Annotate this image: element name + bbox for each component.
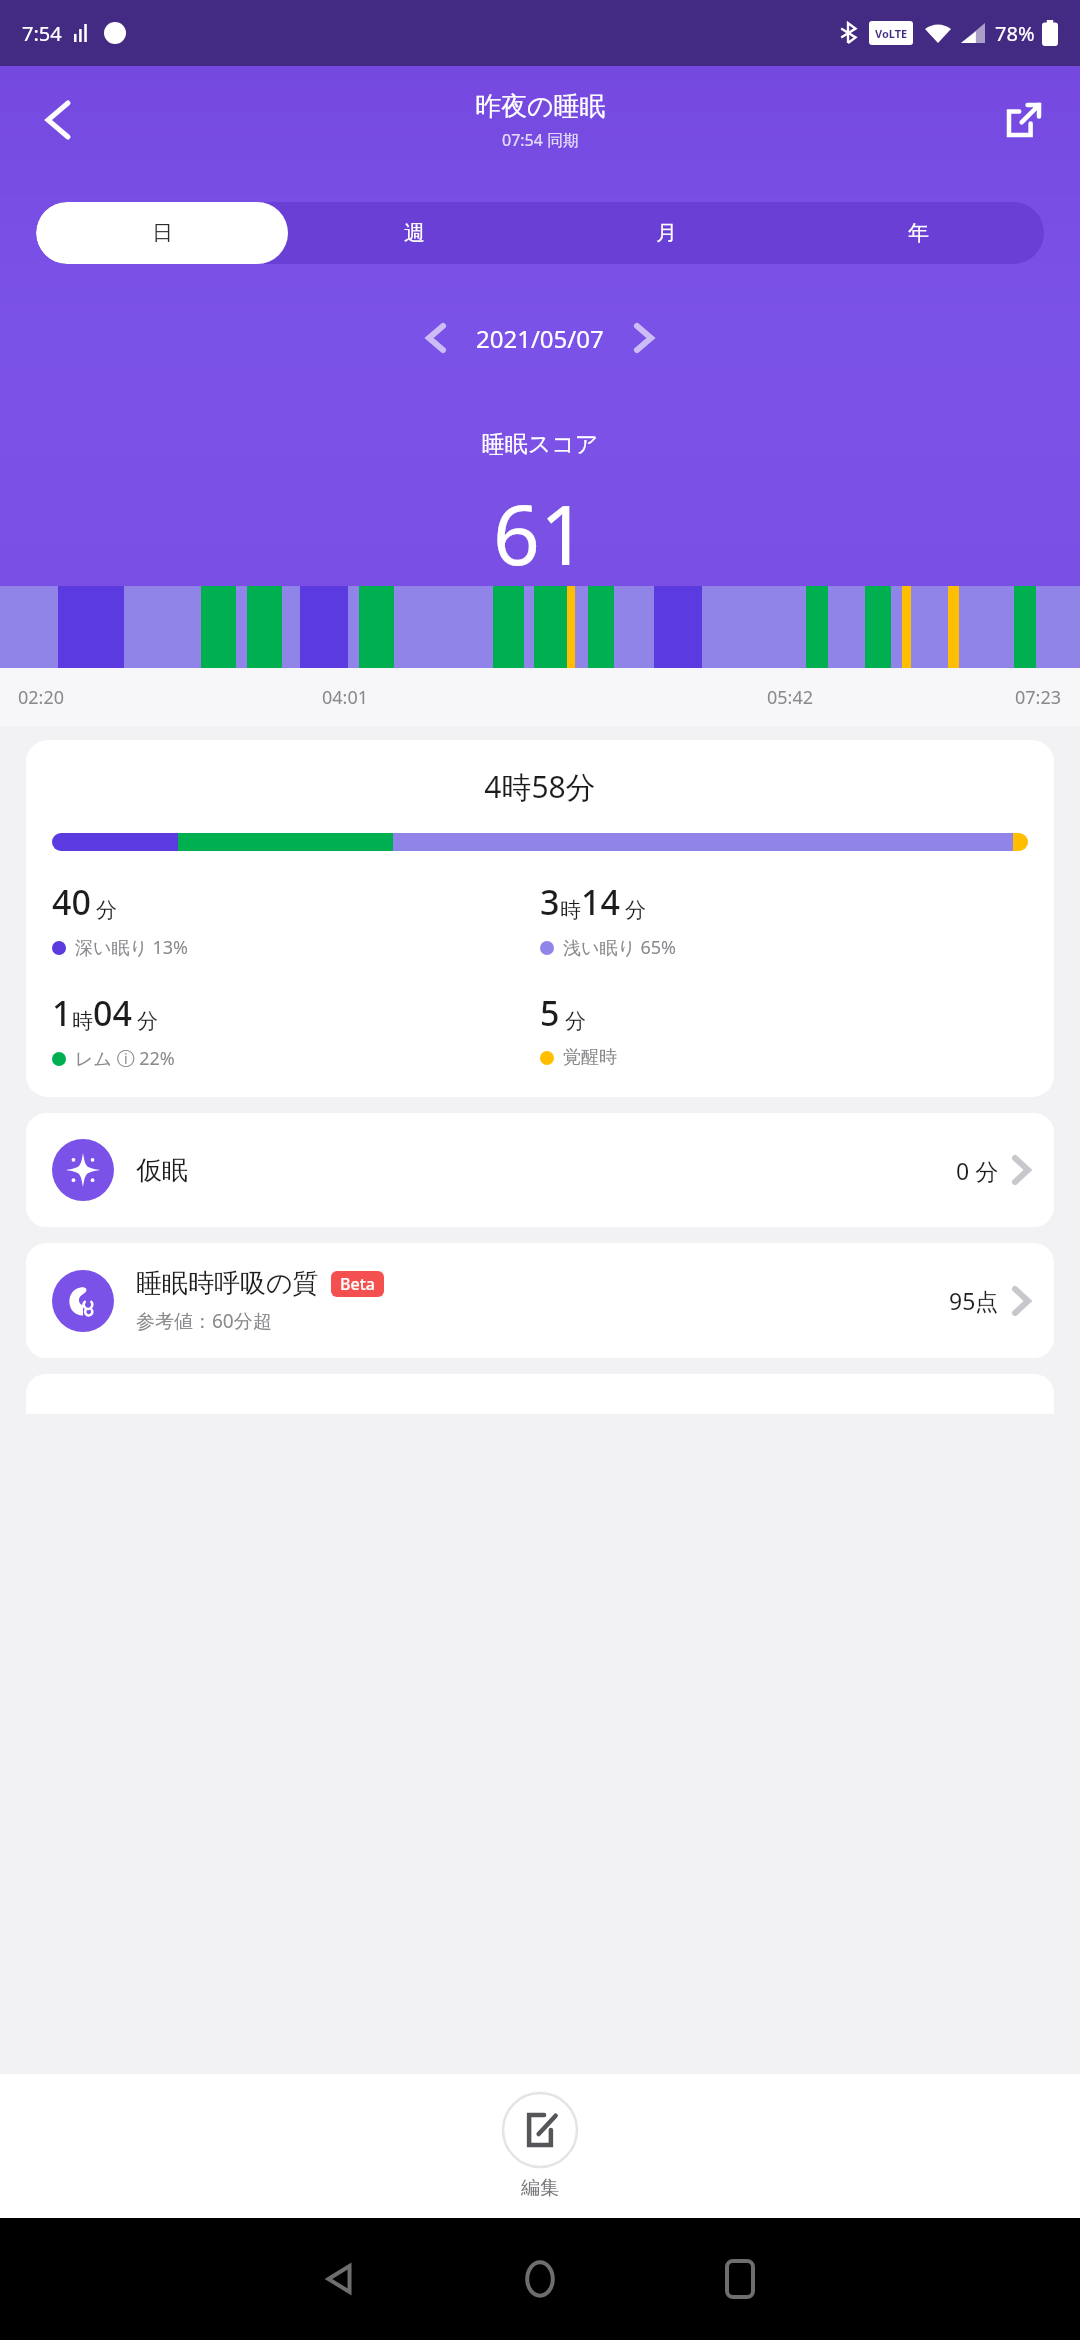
staticText: 分 <box>565 1008 586 1034</box>
staticText: 40 <box>52 879 91 925</box>
staticText: 04:01 <box>322 685 369 710</box>
button[interactable]: Home <box>440 2218 640 2340</box>
staticText: 04 <box>93 990 132 1036</box>
staticText: 05:42 <box>767 685 814 710</box>
staticText: 0 分 <box>956 1155 999 1186</box>
staticText: 78% <box>995 20 1035 47</box>
staticText: 7:54 <box>22 20 62 47</box>
button[interactable]: 年 <box>792 202 1044 264</box>
staticText: 昨夜の睡眠 <box>475 90 606 123</box>
staticText: 07:54 同期 <box>502 129 580 151</box>
staticText: レム ⓘ 22% <box>75 1046 175 1071</box>
button[interactable]: Back <box>30 92 86 148</box>
staticText: 95点 <box>949 1285 999 1316</box>
staticText: 浅い眠り 65% <box>563 935 677 960</box>
button[interactable]: Share <box>996 92 1052 148</box>
button[interactable]: 週 <box>288 202 540 264</box>
staticText: 月 <box>656 220 677 246</box>
staticText: 時 <box>560 897 581 923</box>
button[interactable]: 編集 <box>502 2092 578 2200</box>
staticText: 時 <box>72 1008 93 1034</box>
button[interactable]: 仮眠 <box>26 1113 1054 1227</box>
button[interactable]: 4時58分 <box>26 740 1054 1097</box>
button[interactable]: Next day <box>618 312 670 364</box>
staticText: 61 <box>0 477 1080 586</box>
staticText: 睡眠スコア <box>0 430 1080 459</box>
staticText: 仮眠 <box>136 1154 188 1187</box>
staticText: 5 <box>540 990 560 1036</box>
staticText: 4時58分 <box>26 766 1054 807</box>
staticText: VoLTE <box>875 26 908 41</box>
button[interactable]: Recents <box>640 2218 840 2340</box>
button[interactable]: Back <box>240 2218 440 2340</box>
staticText: 週 <box>404 220 425 246</box>
button[interactable]: 睡眠時呼吸の質 <box>26 1243 1054 1358</box>
staticText: 07:23 <box>1015 685 1062 710</box>
staticText: 14 <box>581 879 620 925</box>
staticText: 02:20 <box>18 685 65 710</box>
staticText: 参考値：60分超 <box>136 1308 272 1334</box>
staticText: 日 <box>152 220 173 246</box>
staticText: 睡眠時呼吸の質 <box>136 1267 319 1300</box>
staticText: Beta <box>340 1273 375 1295</box>
staticText: 年 <box>908 220 929 246</box>
staticText: 分 <box>625 897 646 923</box>
button[interactable]: 月 <box>540 202 792 264</box>
staticText: 2021/05/07 <box>476 322 604 355</box>
button[interactable]: Previous day <box>410 312 462 364</box>
button[interactable]: 日 <box>36 202 288 264</box>
staticText: 分 <box>96 897 117 923</box>
staticText: 1 <box>52 990 72 1036</box>
staticText: 分 <box>137 1008 158 1034</box>
staticText: 編集 <box>521 2176 559 2200</box>
staticText: 深い眠り 13% <box>75 935 189 960</box>
staticText: 覚醒時 <box>563 1046 617 1069</box>
staticText: 3 <box>540 879 560 925</box>
